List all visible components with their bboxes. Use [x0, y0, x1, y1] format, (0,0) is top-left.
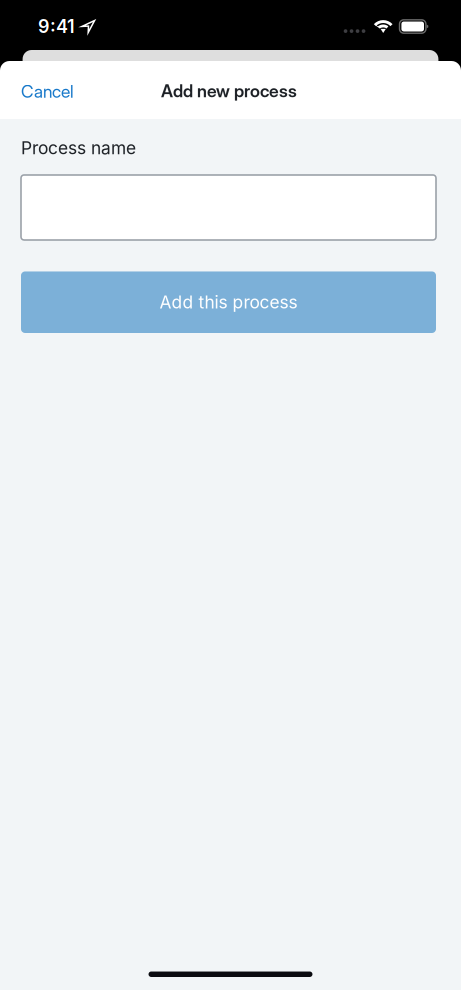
staticText: Cancel: [21, 81, 74, 102]
staticText: Add this process: [159, 292, 297, 313]
staticText: 9:41: [38, 16, 75, 37]
staticText: Add new process: [161, 80, 297, 101]
button[interactable]: Add this process: [0, 240, 461, 333]
staticText: Process name: [21, 137, 136, 158]
button[interactable]: Cancel: [12, 68, 83, 111]
